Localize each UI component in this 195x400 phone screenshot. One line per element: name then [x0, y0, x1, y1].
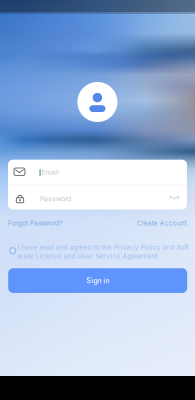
staticText: Email: [41, 168, 59, 176]
staticText: Create Account: [137, 219, 187, 227]
button[interactable]: Sign in: [8, 268, 187, 293]
staticText: Forgot Password?: [8, 219, 62, 227]
staticText: ware License and User Service Agreement: [17, 252, 157, 260]
staticText: I have read and agreed to the Privacy Po…: [17, 243, 188, 251]
button[interactable]: Agree to terms: [10, 248, 16, 254]
staticText: Sign in: [86, 276, 109, 285]
button[interactable]: Forgot Password?: [8, 217, 68, 228]
button[interactable]: Create Account: [132, 217, 187, 228]
staticText: Password: [40, 195, 71, 203]
